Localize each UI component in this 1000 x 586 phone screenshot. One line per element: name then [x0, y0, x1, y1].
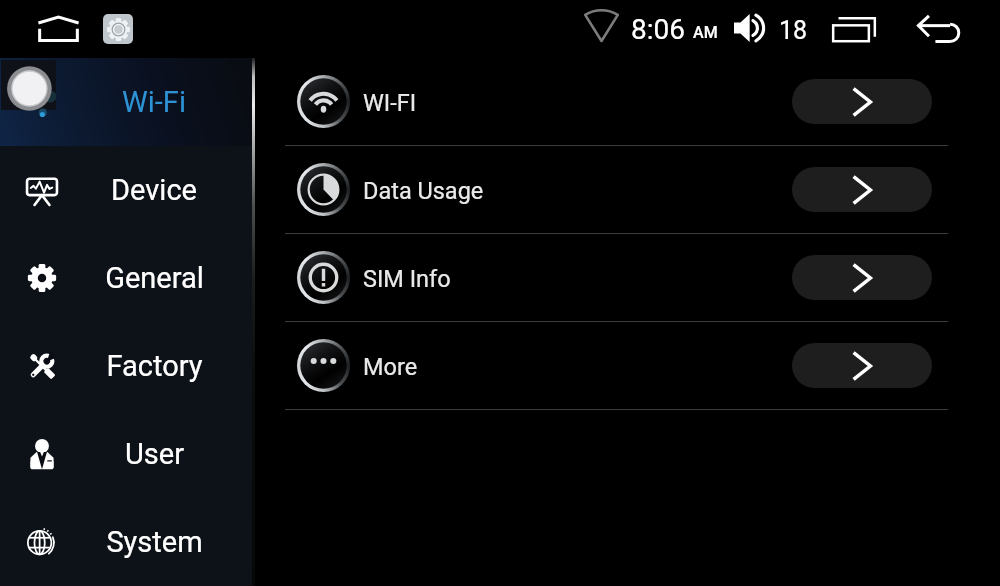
- staticText: Factory: [106, 349, 203, 383]
- button[interactable]: Data Usage: [255, 146, 1000, 234]
- staticText: WI-FI: [363, 89, 417, 117]
- button[interactable]: Open More: [792, 343, 932, 388]
- button[interactable]: Back: [906, 8, 974, 50]
- staticText: Wi-Fi: [122, 85, 186, 119]
- button[interactable]: More: [255, 322, 1000, 410]
- button[interactable]: Open WI-FI: [792, 79, 932, 124]
- staticText: 8:06: [631, 13, 685, 46]
- button[interactable]: Factory: [0, 322, 252, 410]
- button[interactable]: Open SIM Info: [792, 255, 932, 300]
- staticText: 18: [779, 16, 808, 45]
- staticText: More: [363, 353, 418, 381]
- button[interactable]: Settings: [103, 14, 133, 44]
- staticText: SIM Info: [363, 265, 451, 293]
- button[interactable]: General: [0, 234, 252, 322]
- button[interactable]: System: [0, 498, 252, 586]
- staticText: General: [105, 261, 204, 295]
- button[interactable]: Wi-Fi: [0, 58, 252, 146]
- staticText: User: [125, 437, 184, 471]
- staticText: System: [106, 525, 203, 559]
- staticText: AM: [693, 23, 718, 42]
- staticText: Device: [111, 173, 197, 207]
- button[interactable]: User: [0, 410, 252, 498]
- button[interactable]: Recents: [818, 8, 890, 50]
- button[interactable]: SIM Info: [255, 234, 1000, 322]
- staticText: Data Usage: [363, 177, 484, 205]
- button[interactable]: Device: [0, 146, 252, 234]
- button[interactable]: WI-FI: [255, 58, 1000, 146]
- button[interactable]: Home: [30, 10, 86, 48]
- button[interactable]: Open Data Usage: [792, 167, 932, 212]
